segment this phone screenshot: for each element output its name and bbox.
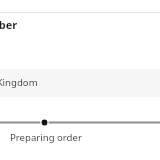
- staticText: Preparing order: [10, 131, 82, 144]
- other: Order progress: [0, 112, 160, 134]
- staticText: United Kingdom: [0, 76, 38, 89]
- button[interactable]: Order number: [0, 13, 160, 35]
- button[interactable]: United Kingdom: [0, 69, 160, 97]
- staticText: Order number: [0, 17, 18, 32]
